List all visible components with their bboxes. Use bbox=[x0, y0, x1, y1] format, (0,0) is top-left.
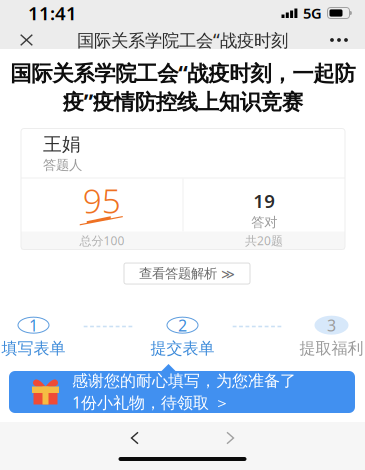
button[interactable]: More bbox=[318, 26, 365, 54]
staticText: 5G bbox=[303, 3, 322, 23]
staticText: 国际关系学院工会“战疫时刻 bbox=[77, 28, 288, 51]
staticText: 查看答题解析 ≫ bbox=[139, 265, 235, 282]
staticText: 11:41 bbox=[28, 1, 77, 25]
staticText: 答题人 bbox=[43, 157, 82, 173]
staticText: 总分100 bbox=[79, 232, 124, 248]
staticText: 感谢您的耐心填写，为您准备了 bbox=[72, 371, 296, 391]
staticText: 95 bbox=[83, 178, 121, 223]
staticText: 共20题 bbox=[245, 232, 283, 248]
staticText: 国际关系学院工会“战疫时刻，一起防疫”疫情防控线上知识竞赛 bbox=[10, 59, 355, 115]
staticText: 3 bbox=[327, 314, 336, 336]
button[interactable]: Close bbox=[0, 26, 45, 54]
staticText: 提交表单 bbox=[150, 339, 214, 358]
staticText: 1 bbox=[29, 314, 38, 336]
staticText: 填写表单 bbox=[1, 339, 65, 358]
staticText: 2 bbox=[178, 314, 187, 336]
staticText: 答对 bbox=[251, 214, 277, 231]
staticText: 1份小礼物，待领取 ＞ bbox=[72, 392, 230, 413]
staticText: 王娟 bbox=[43, 133, 81, 156]
button[interactable]: Forward bbox=[201, 425, 258, 451]
button[interactable]: Back bbox=[106, 425, 163, 451]
button[interactable]: 查看答题解析 ≫ bbox=[124, 263, 250, 284]
staticText: 提取福利 bbox=[299, 339, 363, 358]
button[interactable]: 感谢您的耐心填写，为您准备了 bbox=[9, 371, 355, 413]
staticText: 19 bbox=[253, 188, 275, 213]
